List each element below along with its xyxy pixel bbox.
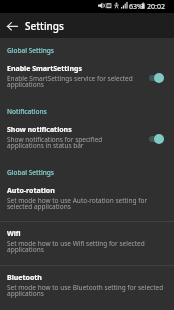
staticText: Global Settings — [7, 46, 54, 55]
staticText: Global Settings — [7, 168, 54, 177]
staticText: 63% — [129, 2, 143, 12]
staticText: Show notifications for specified applica… — [7, 135, 136, 150]
button[interactable]: Auto-rotation — [0, 186, 174, 211]
button[interactable]: Show notifications — [0, 125, 174, 150]
button[interactable]: Enable SmartSettings — [0, 64, 174, 89]
staticText: Enable SmartSettings service for selecte… — [7, 74, 136, 89]
staticText: Notifications — [7, 107, 47, 116]
staticText: Settings — [25, 19, 64, 33]
staticText: Set mode how to use Bluetooth setting fo… — [7, 283, 165, 298]
staticText: Set mode how to use Auto-rotation settin… — [7, 196, 165, 211]
staticText: Auto-rotation — [7, 186, 55, 196]
button[interactable]: Wifi — [0, 229, 174, 254]
staticText: 20:02 — [147, 2, 165, 12]
staticText: Set mode how to use Wifi setting for sel… — [7, 239, 165, 254]
button[interactable]: Bluetooth — [0, 273, 174, 298]
staticText: Enable SmartSettings — [7, 64, 82, 74]
button[interactable]: Toggle switch, on — [149, 72, 164, 83]
button[interactable]: Toggle switch, on — [149, 133, 164, 144]
staticText: Bluetooth — [7, 273, 42, 283]
button[interactable]: Navigate up — [3, 17, 21, 35]
staticText: Wifi — [7, 229, 21, 239]
staticText: Show notifications — [7, 125, 72, 135]
